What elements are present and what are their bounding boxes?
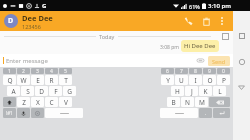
button[interactable]: Hi Dee Dee bbox=[181, 40, 219, 52]
button[interactable]: Enter bbox=[213, 108, 230, 118]
button[interactable]: 7 bbox=[175, 68, 188, 74]
staticText: Y bbox=[166, 76, 170, 85]
staticText: A bbox=[11, 87, 16, 96]
button[interactable]: T bbox=[59, 75, 72, 85]
button[interactable]: O bbox=[203, 75, 216, 85]
button[interactable]: Home bbox=[235, 55, 248, 68]
button[interactable]: Send bbox=[208, 56, 230, 66]
button[interactable]: 0 bbox=[217, 68, 230, 74]
button[interactable]: H bbox=[171, 86, 184, 96]
staticText: I bbox=[194, 76, 197, 85]
staticText: B bbox=[171, 98, 176, 107]
button[interactable]: Space bbox=[45, 108, 83, 118]
staticText: 61% bbox=[189, 3, 200, 10]
button[interactable]: Call bbox=[179, 12, 197, 30]
button[interactable]: Recents bbox=[235, 29, 248, 42]
staticText: 3 bbox=[36, 68, 39, 74]
staticText: S bbox=[26, 87, 30, 96]
staticText: . bbox=[205, 110, 207, 116]
button[interactable]: P bbox=[217, 75, 230, 85]
button[interactable]: X bbox=[31, 97, 44, 107]
staticText: Q bbox=[7, 76, 13, 85]
button[interactable]: Z bbox=[17, 97, 30, 107]
button[interactable]: 6 bbox=[161, 68, 174, 74]
button[interactable]: B bbox=[167, 97, 180, 107]
button[interactable]: E bbox=[31, 75, 44, 85]
button[interactable]: M bbox=[195, 97, 208, 107]
staticText: N bbox=[185, 98, 190, 107]
staticText: J bbox=[191, 87, 193, 96]
button[interactable]: R bbox=[45, 75, 58, 85]
staticText: X bbox=[36, 98, 40, 107]
staticText: E bbox=[36, 76, 40, 85]
staticText: 8 bbox=[194, 68, 197, 74]
staticText: D bbox=[8, 16, 14, 26]
button[interactable]: Select message bbox=[221, 32, 230, 41]
button[interactable]: J bbox=[185, 86, 198, 96]
staticText: K bbox=[203, 87, 208, 96]
button[interactable]: U bbox=[175, 75, 188, 85]
button[interactable]: V bbox=[59, 97, 72, 107]
staticText: G bbox=[67, 87, 72, 96]
button[interactable]: . bbox=[199, 108, 212, 118]
button[interactable]: L bbox=[213, 86, 226, 96]
button[interactable]: I bbox=[189, 75, 202, 85]
button[interactable]: 1 bbox=[3, 68, 16, 74]
button[interactable]: Space bbox=[160, 108, 198, 118]
button[interactable]: Voice input bbox=[17, 108, 30, 118]
staticText: 9 bbox=[208, 68, 211, 74]
button[interactable]: More options bbox=[215, 14, 229, 28]
staticText: 4 bbox=[50, 68, 53, 74]
staticText: Hi Dee Dee bbox=[184, 42, 216, 50]
button[interactable]: G bbox=[63, 86, 76, 96]
button[interactable]: F bbox=[49, 86, 62, 96]
staticText: 6 bbox=[166, 68, 169, 74]
button[interactable]: 8 bbox=[189, 68, 202, 74]
button[interactable]: Backspace bbox=[209, 97, 230, 107]
staticText: L bbox=[218, 87, 222, 96]
staticText: 0 bbox=[222, 68, 225, 74]
button[interactable]: 9 bbox=[203, 68, 216, 74]
button[interactable]: Q bbox=[3, 75, 16, 85]
staticText: Send bbox=[212, 58, 226, 65]
staticText: Today bbox=[99, 33, 115, 40]
staticText: 1 bbox=[8, 68, 11, 74]
staticText: C bbox=[49, 98, 54, 107]
button[interactable]: C bbox=[45, 97, 58, 107]
staticText: F bbox=[54, 87, 58, 96]
button[interactable]: K bbox=[199, 86, 212, 96]
button[interactable]: !#1 bbox=[3, 108, 16, 118]
staticText: M bbox=[199, 98, 205, 107]
button[interactable]: 5 bbox=[59, 68, 72, 74]
staticText: Z bbox=[22, 98, 26, 107]
button[interactable]: 4 bbox=[45, 68, 58, 74]
staticText: H bbox=[175, 87, 180, 96]
button[interactable]: 3 bbox=[31, 68, 44, 74]
staticText: O bbox=[207, 76, 213, 85]
button[interactable]: Attach bbox=[195, 55, 206, 66]
staticText: 5 bbox=[64, 68, 67, 74]
button[interactable]: 2 bbox=[17, 68, 30, 74]
staticText: Dee Dee bbox=[22, 13, 53, 23]
button[interactable]: D bbox=[35, 86, 48, 96]
button[interactable]: N bbox=[181, 97, 194, 107]
staticText: 3:08 pm bbox=[160, 44, 179, 51]
button[interactable]: Shift bbox=[3, 97, 16, 107]
button[interactable]: S bbox=[21, 86, 34, 96]
staticText: 7 bbox=[180, 68, 183, 74]
button[interactable]: Back bbox=[235, 81, 248, 94]
button[interactable]: Delete bbox=[197, 12, 215, 30]
button[interactable]: Y bbox=[161, 75, 174, 85]
button[interactable]: W bbox=[17, 75, 30, 85]
staticText: P bbox=[222, 76, 226, 85]
staticText: T bbox=[64, 76, 68, 85]
staticText: W bbox=[20, 76, 27, 85]
button[interactable]: Enter message bbox=[6, 57, 195, 65]
button[interactable]: Keyboard settings bbox=[31, 108, 44, 118]
button[interactable]: Dee Dee bbox=[22, 13, 179, 30]
staticText: U bbox=[179, 76, 184, 85]
staticText: R bbox=[49, 76, 54, 85]
staticText: 2 bbox=[22, 68, 25, 74]
staticText: D bbox=[39, 87, 44, 96]
button[interactable]: A bbox=[7, 86, 20, 96]
